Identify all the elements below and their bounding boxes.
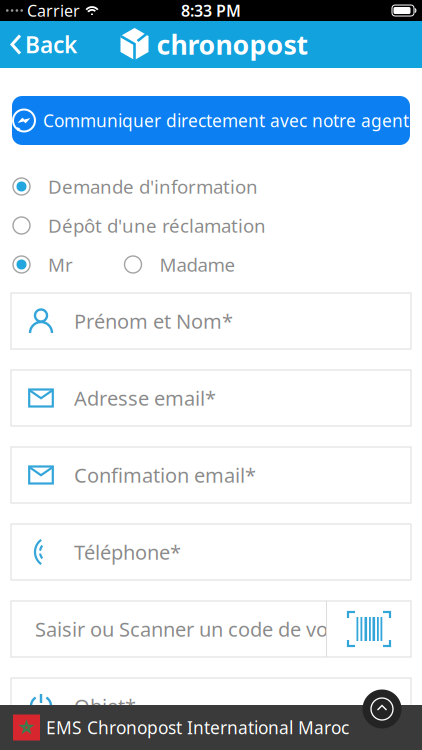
button[interactable]: Madame bbox=[124, 252, 235, 277]
button[interactable]: Communiquer directement avec notre agent bbox=[12, 96, 410, 145]
staticText: Carrier bbox=[27, 0, 80, 21]
button[interactable]: EMS Chronopost International Maroc bbox=[0, 705, 422, 750]
button[interactable]: Saisir ou Scanner un code de votre code bbox=[11, 601, 326, 657]
button[interactable]: Demande d'information bbox=[13, 178, 422, 195]
button[interactable]: Scroll to top bbox=[362, 689, 401, 728]
staticText: Objet* bbox=[74, 693, 136, 719]
staticText: chronopost bbox=[156, 27, 308, 62]
staticText: Prénom et Nom* bbox=[74, 308, 233, 334]
staticText: Téléphone* bbox=[74, 539, 181, 565]
button[interactable]: Téléphone* bbox=[11, 524, 411, 580]
staticText: Confimation email* bbox=[74, 462, 256, 488]
button[interactable]: Objet* bbox=[11, 678, 411, 734]
staticText: Dépôt d'une réclamation bbox=[48, 213, 266, 238]
staticText: Back bbox=[25, 29, 77, 59]
button[interactable]: Dépôt d'une réclamation bbox=[13, 217, 422, 234]
staticText: Madame bbox=[159, 252, 235, 277]
button[interactable]: Back bbox=[10, 29, 77, 59]
button[interactable]: Prénom et Nom* bbox=[11, 293, 411, 349]
staticText: Saisir ou Scanner un code de votre code bbox=[35, 616, 404, 642]
button[interactable]: Confimation email* bbox=[11, 447, 411, 503]
button[interactable]: Scanner un code-barres bbox=[326, 601, 411, 657]
staticText: EMS Chronopost International Maroc bbox=[46, 716, 349, 739]
button[interactable]: Mr bbox=[13, 252, 73, 277]
staticText: 8:33 PM bbox=[181, 0, 241, 21]
staticText: Demande d'information bbox=[48, 174, 258, 199]
staticText: Adresse email* bbox=[74, 385, 216, 411]
staticText: Communiquer directement avec notre agent bbox=[43, 109, 409, 132]
button[interactable]: Adresse email* bbox=[11, 370, 411, 426]
staticText: Mr bbox=[48, 252, 73, 277]
